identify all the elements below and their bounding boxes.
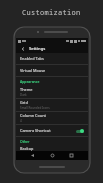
button[interactable]: Column Count: [16, 112, 88, 124]
staticText: Settings: [29, 46, 46, 52]
staticText: Appearance: [20, 79, 40, 84]
staticText: Grid: [20, 100, 28, 105]
staticText: Backup: [20, 146, 34, 151]
button[interactable]: Theme: [16, 86, 88, 98]
button[interactable]: Grid: [16, 99, 88, 111]
staticText: Enabled Tabs: [20, 56, 44, 61]
staticText: Dark: [20, 93, 27, 97]
staticText: Theme: [20, 87, 33, 92]
button[interactable]: Virtual Mouse: [16, 65, 88, 76]
staticText: Virtual Mouse: [20, 68, 46, 73]
button[interactable]: Recents: [68, 152, 75, 159]
button[interactable]: Camera Shortcut: [16, 125, 88, 136]
button[interactable]: Back: [19, 45, 26, 52]
staticText: Column Count: [20, 113, 47, 118]
staticText: Customization: [22, 8, 81, 18]
button[interactable]: Home: [49, 152, 56, 159]
button[interactable]: Enabled Tabs: [16, 53, 88, 64]
staticText: Other: [20, 139, 30, 144]
staticText: Small Rounded Icons: [20, 106, 50, 110]
staticText: Camera Shortcut: [20, 128, 51, 133]
button[interactable]: Backup: [16, 146, 88, 151]
button[interactable]: Back: [29, 152, 36, 159]
staticText: 4: [20, 119, 22, 123]
